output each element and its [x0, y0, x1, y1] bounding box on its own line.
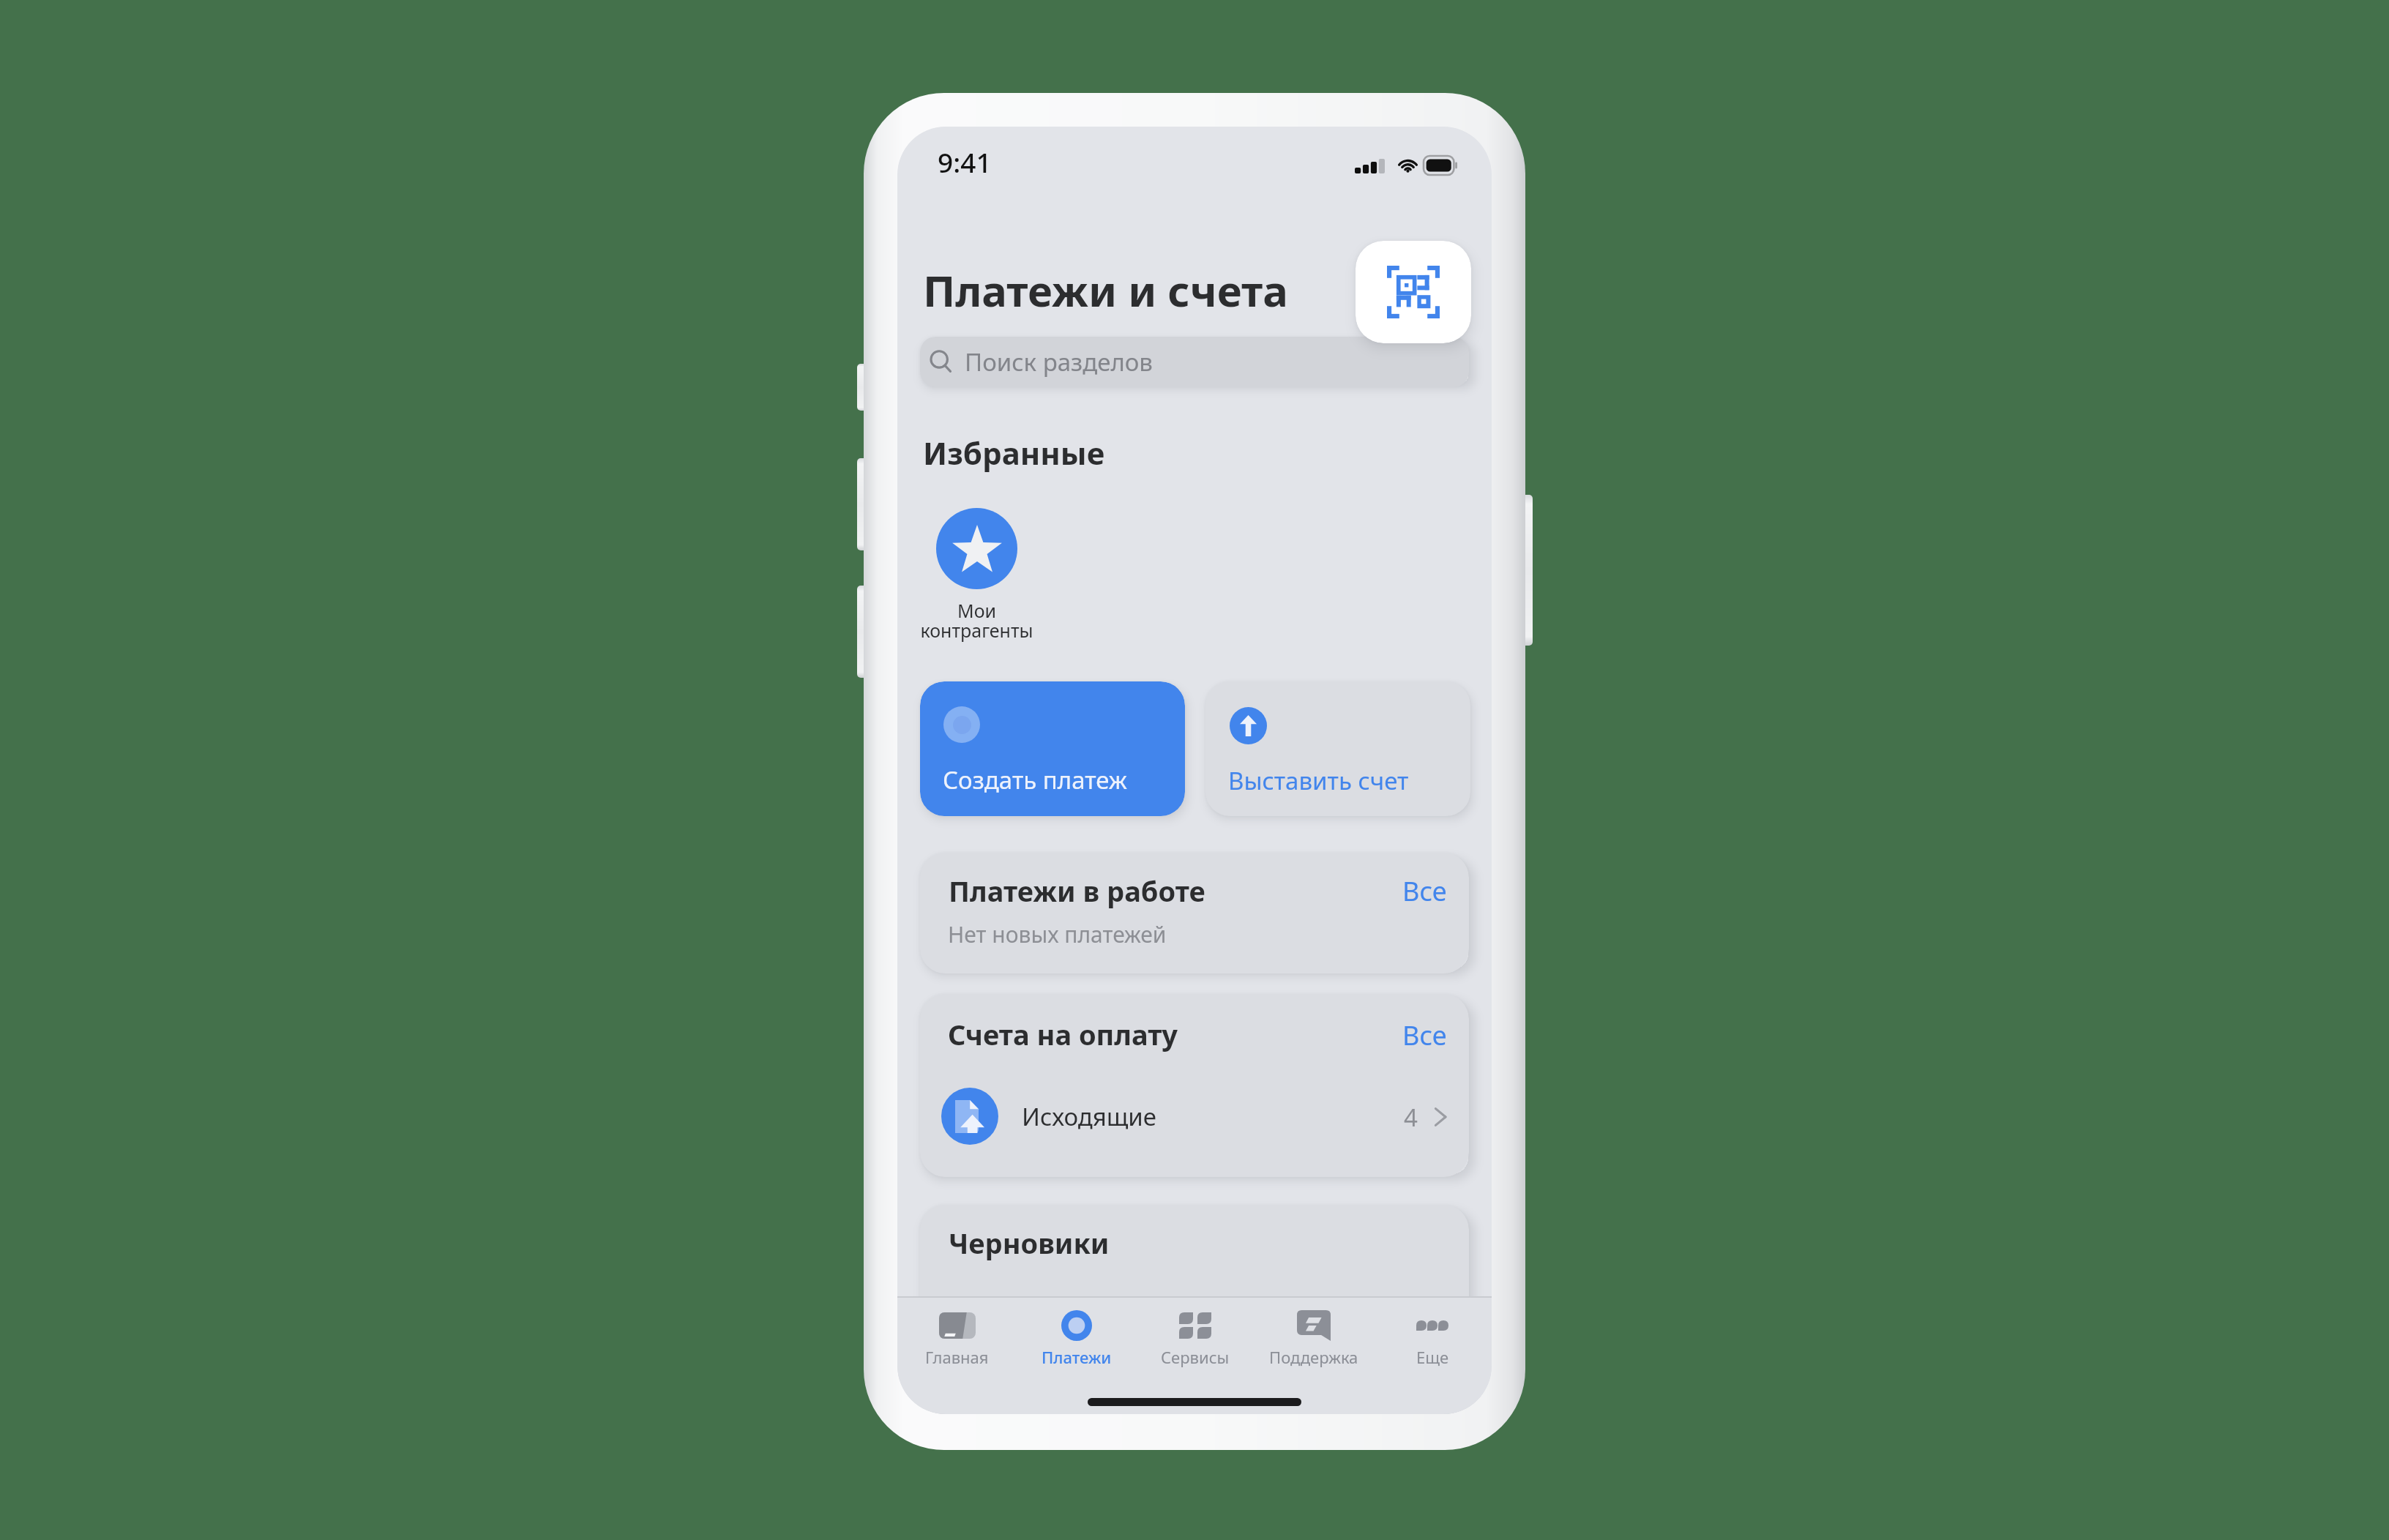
staticText: Платежи — [1042, 1346, 1112, 1368]
button[interactable]: Все — [1397, 1014, 1452, 1056]
staticText: Избранные — [923, 432, 1105, 474]
button[interactable]: Выставить счет — [1205, 681, 1470, 816]
button[interactable]: Главная — [897, 1298, 1017, 1382]
button[interactable]: Сервисы — [1136, 1298, 1255, 1382]
button[interactable]: Поддержка — [1255, 1298, 1373, 1382]
staticText: Еще — [1416, 1346, 1449, 1368]
button[interactable]: Еще — [1373, 1298, 1492, 1382]
button[interactable]: Мои контрагенты — [907, 508, 1046, 643]
staticText: Все — [1402, 873, 1447, 909]
button[interactable]: Черновики — [920, 1205, 1469, 1414]
staticText: Все — [1402, 1017, 1447, 1053]
button[interactable]: Исходящие — [920, 1074, 1469, 1162]
staticText: Сервисы — [1161, 1346, 1230, 1368]
staticText: Счета на оплату — [948, 1015, 1178, 1053]
button[interactable]: Сканировать QR-код — [1356, 241, 1471, 343]
staticText: Платежи и счета — [923, 261, 1288, 319]
staticText: Создать платеж — [943, 763, 1127, 796]
button[interactable]: Платежи в работе — [920, 853, 1469, 973]
button[interactable]: Все — [1397, 870, 1452, 912]
staticText: Мои контрагенты — [920, 598, 1033, 643]
staticText: Нет новых платежей — [948, 919, 1167, 949]
staticText: 4 — [1404, 1101, 1418, 1134]
button[interactable]: Создать платеж — [920, 681, 1185, 816]
staticText: Главная — [925, 1346, 989, 1368]
staticText: 9:41 — [938, 143, 992, 180]
staticText: Исходящие — [1022, 1100, 1157, 1133]
staticText: Черновики — [949, 1224, 1110, 1262]
staticText: Платежи в работе — [949, 872, 1205, 910]
button[interactable]: Платежи — [1017, 1298, 1136, 1382]
staticText: Поддержка — [1269, 1346, 1358, 1368]
button[interactable]: Поиск разделов — [920, 337, 1469, 387]
staticText: Выставить счет — [1228, 764, 1409, 797]
staticText: Поиск разделов — [965, 345, 1153, 378]
